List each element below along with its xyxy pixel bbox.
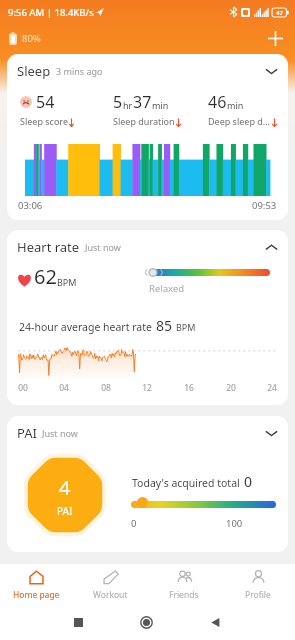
- staticText: 24-hour average heart rate: [19, 320, 152, 334]
- staticText: hr: [123, 99, 133, 111]
- staticText: Today's acquired total: [132, 476, 240, 490]
- staticText: BPM: [57, 276, 77, 288]
- button[interactable]: Heart rate: [7, 230, 288, 261]
- staticText: min: [152, 99, 169, 111]
- staticText: BPM: [176, 321, 196, 333]
- staticText: 0: [244, 472, 253, 491]
- staticText: 4: [59, 474, 71, 501]
- staticText: 62: [34, 263, 57, 290]
- staticText: 3 mins ago: [56, 65, 103, 77]
- staticText: Sleep: [17, 62, 51, 80]
- staticText: 20: [226, 382, 236, 392]
- button[interactable]: Home page: [0, 564, 73, 605]
- staticText: 80%: [22, 32, 41, 45]
- staticText: Deep sleep d...: [208, 115, 271, 127]
- staticText: 09:53: [252, 199, 277, 212]
- button[interactable]: Sleep: [7, 54, 288, 85]
- staticText: PAI: [17, 424, 37, 442]
- staticText: 04: [59, 382, 69, 392]
- staticText: min: [227, 99, 244, 111]
- button[interactable]: Add: [264, 27, 286, 49]
- staticText: Sleep duration: [113, 115, 175, 127]
- staticText: 37: [133, 91, 152, 113]
- staticText: Friends: [169, 589, 199, 601]
- staticText: 46: [208, 91, 227, 113]
- button[interactable]: Profile: [221, 564, 295, 605]
- staticText: Heart rate: [17, 238, 80, 256]
- button[interactable]: Friends: [147, 564, 221, 605]
- staticText: 0: [131, 517, 137, 530]
- staticText: Just now: [42, 427, 78, 439]
- staticText: 54: [36, 91, 55, 113]
- button[interactable]: PAI: [7, 416, 288, 447]
- button[interactable]: Workout: [73, 564, 147, 605]
- staticText: Profile: [245, 589, 271, 601]
- staticText: 24: [267, 382, 277, 392]
- staticText: 12: [142, 382, 152, 392]
- staticText: Just now: [85, 241, 121, 253]
- staticText: 47: [276, 9, 283, 17]
- staticText: 03:06: [18, 199, 43, 212]
- button[interactable]: Home: [140, 616, 153, 629]
- staticText: Home page: [13, 589, 60, 601]
- staticText: 16: [184, 382, 194, 392]
- staticText: Sleep score: [20, 115, 68, 127]
- staticText: 100: [226, 517, 243, 530]
- staticText: 08: [101, 382, 111, 392]
- staticText: PAI: [57, 504, 73, 518]
- staticText: 00: [18, 382, 28, 392]
- staticText: 85: [156, 316, 173, 335]
- staticText: 5: [113, 91, 123, 113]
- button[interactable]: Back: [210, 617, 221, 628]
- staticText: Workout: [93, 589, 128, 601]
- staticText: Relaxed: [149, 282, 185, 295]
- staticText: 9:56 AM | 18.4KB/s: [8, 6, 94, 19]
